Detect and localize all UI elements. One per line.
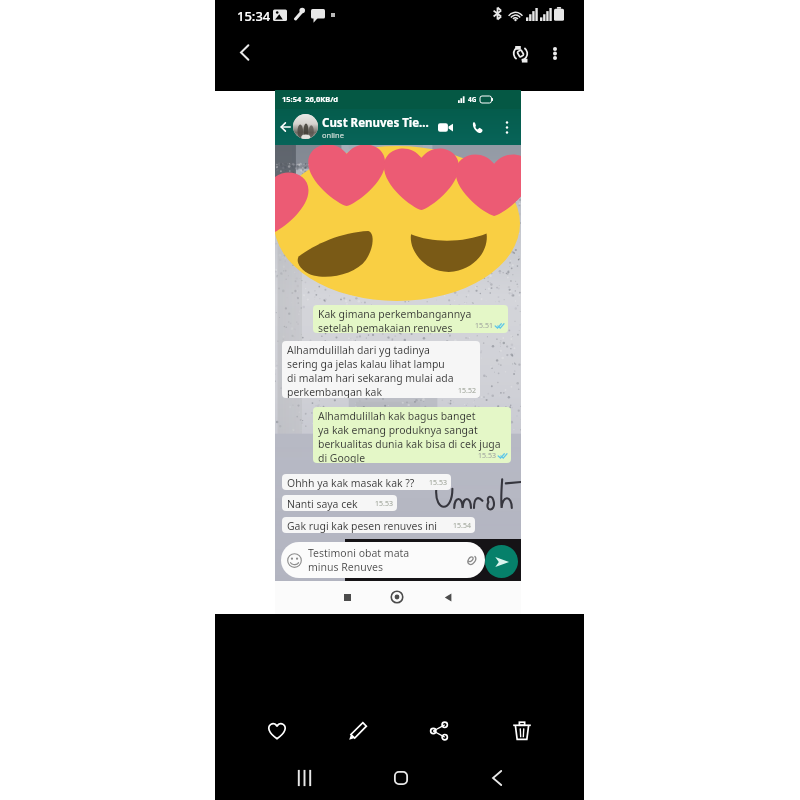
button[interactable]: Home (385, 585, 409, 609)
button[interactable]: Gak rugi kak pesen renuves ini (282, 517, 475, 533)
button[interactable]: Recent apps (280, 754, 328, 800)
button[interactable]: Delete (498, 707, 546, 755)
button[interactable]: Share (415, 707, 463, 755)
staticText: 15.52 (458, 386, 476, 396)
staticText: 15:34 (237, 7, 271, 25)
staticText: Cust Renuves Tie... (322, 115, 429, 131)
staticText: 15.53 (478, 451, 496, 461)
button[interactable]: Rotate screen (498, 31, 542, 75)
staticText: perkembangan kak (287, 385, 383, 398)
staticText: Alhamdulillah dari yg tadinya (287, 343, 430, 357)
staticText: 4G (468, 95, 477, 104)
staticText: berkualitas dunia kak bisa di cek juga (318, 437, 501, 451)
staticText: Gak rugi kak pesen renuves ini (287, 519, 438, 533)
staticText: minus Renuves (308, 560, 383, 574)
staticText: di Google (318, 451, 366, 463)
button[interactable]: Back (473, 754, 521, 800)
staticText: 15.51 (475, 321, 493, 331)
button[interactable]: Nanti saya cek (282, 495, 397, 511)
button[interactable]: Alhamdulillah dari yg tadinya (282, 341, 480, 398)
staticText: di malam hari sekarang mulai ada (287, 371, 454, 385)
staticText: 15:54 26,0KB/d (282, 94, 338, 104)
button[interactable]: Favorite (253, 707, 301, 755)
staticText: Testimoni obat mata (308, 546, 410, 560)
button[interactable]: Back (222, 30, 266, 74)
button[interactable]: Ohhh ya kak masak kak ?? (282, 474, 451, 490)
staticText: 15.53 (429, 478, 447, 488)
staticText: sering ga jelas kalau lihat lampu (287, 357, 445, 371)
staticText: Kak gimana perkembangannya (318, 307, 472, 321)
staticText: setelah pemakaian renuves (318, 321, 453, 333)
staticText: Ohhh ya kak masak kak ?? (287, 476, 415, 490)
button[interactable]: Send (485, 545, 518, 578)
button[interactable]: Kak gimana perkembangannya (313, 305, 508, 333)
staticText: ya kak emang produknya sangat (318, 423, 478, 437)
staticText: 15.54 (453, 521, 471, 531)
button[interactable]: Testimoni obat mata (281, 542, 485, 578)
button[interactable]: Edit (334, 707, 382, 755)
button[interactable]: Recent apps (335, 585, 359, 609)
staticText: Nanti saya cek (287, 497, 358, 511)
button[interactable]: Back (436, 585, 460, 609)
staticText: online (322, 130, 344, 140)
button[interactable]: More options (533, 31, 577, 75)
button[interactable]: Home (377, 754, 425, 800)
staticText: Alhamdulillah kak bagus banget (318, 409, 476, 423)
button[interactable]: Alhamdulillah kak bagus banget (313, 407, 511, 463)
staticText: 15.53 (375, 499, 393, 509)
